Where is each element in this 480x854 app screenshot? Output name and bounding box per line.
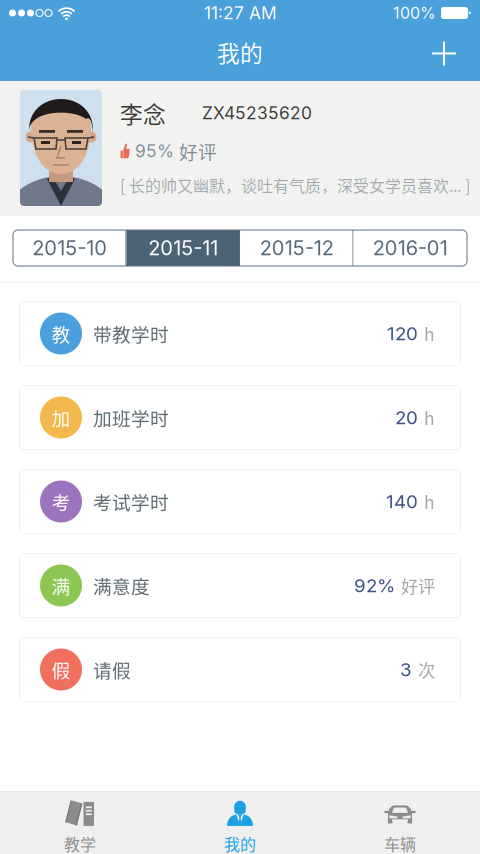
staticText: 考 <box>51 488 70 515</box>
staticText: 考试学时 <box>93 488 169 515</box>
staticText: 假 <box>51 656 70 683</box>
button[interactable]: 教 <box>19 301 461 366</box>
staticText: 加班学时 <box>93 404 169 431</box>
button[interactable]: 我的 <box>160 792 320 854</box>
staticText: 2016-01 <box>373 236 448 260</box>
staticText: 100% <box>393 3 436 23</box>
button[interactable]: 考 <box>19 469 461 534</box>
staticText: 2015-11 <box>148 236 218 260</box>
staticText: h <box>424 405 435 430</box>
staticText: h <box>424 321 435 346</box>
staticText: 车辆 <box>384 832 416 854</box>
button[interactable]: 2015-10 <box>13 230 126 266</box>
staticText: 带教学时 <box>93 320 169 347</box>
staticText: 95% <box>135 140 174 161</box>
staticText: 我的 <box>224 832 256 854</box>
staticText: 好评 <box>179 137 217 164</box>
staticText: 140 <box>386 490 418 513</box>
button[interactable]: 车辆 <box>320 792 480 854</box>
staticText: h <box>424 489 435 514</box>
button[interactable]: 教学 <box>0 792 160 854</box>
staticText: 92% <box>354 574 395 597</box>
button[interactable]: 加 <box>19 385 461 450</box>
button[interactable]: 满 <box>19 553 461 618</box>
staticText: 加 <box>51 404 70 431</box>
staticText: 我的 <box>217 36 263 68</box>
staticText: 2015-10 <box>32 236 107 260</box>
staticText: 120 <box>387 322 418 345</box>
staticText: 李念 <box>120 97 166 129</box>
button[interactable]: 2015-12 <box>240 230 353 266</box>
button[interactable]: 假 <box>19 637 461 702</box>
staticText: 教 <box>51 320 70 347</box>
staticText: 教学 <box>64 832 96 854</box>
staticText: 满 <box>51 572 70 599</box>
staticText: 3 <box>400 658 412 681</box>
staticText: 20 <box>395 406 418 429</box>
button[interactable]: 2016-01 <box>353 230 467 266</box>
staticText: ZX45235620 <box>202 102 312 123</box>
button[interactable]: Add <box>420 31 480 75</box>
staticText: 11:27 AM <box>204 2 277 23</box>
staticText: 满意度 <box>93 572 150 599</box>
staticText: [ 长的帅又幽默，谈吐有气质，深受女学员喜欢... ] <box>120 173 470 197</box>
staticText: 2015-12 <box>260 236 334 260</box>
staticText: 好评 <box>401 573 435 598</box>
staticText: 请假 <box>93 656 131 683</box>
button[interactable]: 2015-11 <box>126 230 240 266</box>
staticText: 次 <box>418 657 435 682</box>
